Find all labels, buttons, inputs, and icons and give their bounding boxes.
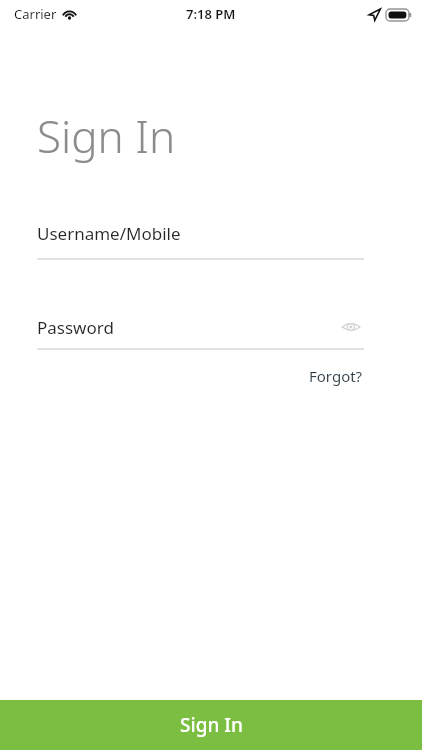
button[interactable]: Username/Mobile (0, 222, 422, 260)
staticText: Sign In (37, 106, 176, 166)
staticText: Username/Mobile (37, 222, 181, 245)
staticText: Forgot? (309, 366, 363, 386)
button[interactable]: Show password (338, 314, 364, 340)
staticText: 7:18 PM (186, 5, 236, 23)
button[interactable]: Password (37, 314, 364, 340)
button[interactable]: Sign In (0, 700, 422, 750)
button[interactable]: Forgot? (306, 363, 366, 389)
staticText: Password (37, 316, 114, 339)
staticText: Sign In (180, 712, 243, 738)
staticText: Carrier (14, 5, 57, 23)
